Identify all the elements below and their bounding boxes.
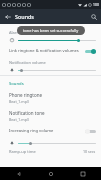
button[interactable]: Notification tone — [0, 107, 101, 125]
button[interactable]: Recent apps — [78, 169, 87, 178]
staticText: Notification tone — [9, 110, 45, 116]
button[interactable]: Back — [2, 11, 13, 22]
button[interactable]: Increasing ring volume — [0, 125, 101, 137]
staticText: 10 secs — [83, 149, 96, 154]
staticText: Sounds — [15, 13, 34, 20]
button[interactable]: Notification volume — [0, 57, 101, 75]
staticText: tone has been set successfully — [23, 28, 79, 33]
button[interactable]: Ramp-up time — [0, 148, 101, 154]
button[interactable]: Home — [46, 169, 55, 178]
button[interactable]: Phone ringtone — [0, 89, 101, 107]
staticText: Notification volume — [9, 60, 46, 65]
staticText: Increasing ring volume — [9, 128, 83, 134]
staticText: Beat_1.mp3 — [9, 117, 29, 122]
staticText: Link ringtone & notification volumes — [9, 48, 83, 54]
button[interactable]: Link ringtone & notification volumes — [0, 45, 101, 57]
staticText: Phone ringtone — [9, 92, 42, 98]
button[interactable]: Alarm volume — [0, 27, 101, 45]
staticText: Sounds — [9, 81, 24, 87]
staticText: Ramp-up time — [9, 149, 83, 154]
staticText: Beat_1.mp3 — [9, 99, 29, 104]
staticText: Alarm volume — [9, 30, 36, 35]
button[interactable]: Back — [14, 169, 23, 178]
button[interactable]: Search — [88, 11, 99, 22]
button[interactable] — [0, 137, 101, 148]
staticText: 100 — [93, 2, 99, 7]
